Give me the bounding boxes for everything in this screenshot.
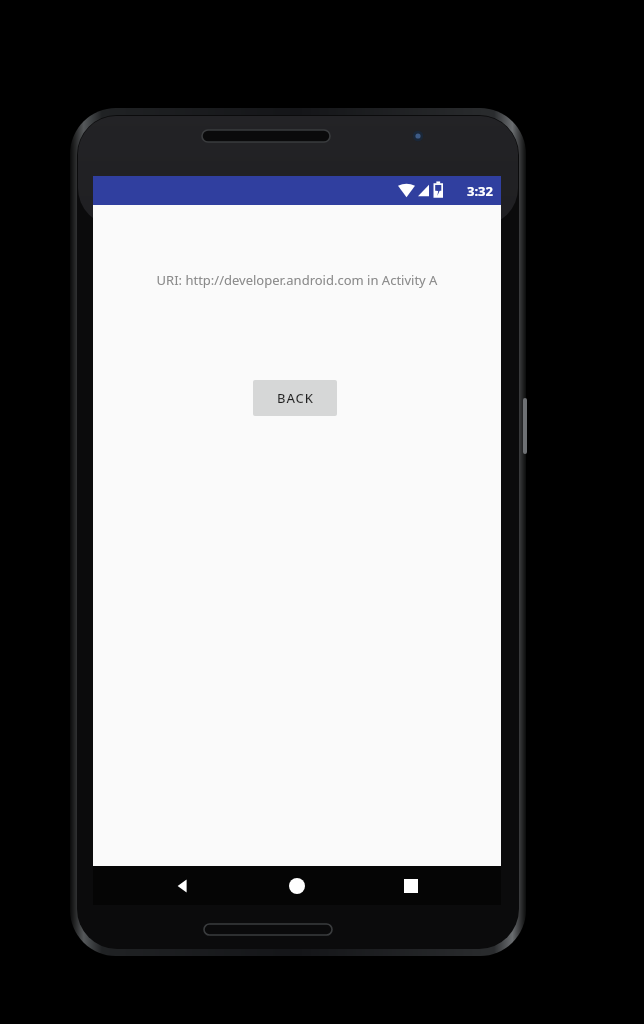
button[interactable]: BACK — [253, 380, 337, 416]
staticText: 3:32 — [467, 182, 493, 200]
staticText: BACK — [277, 389, 314, 407]
button[interactable]: Recent apps — [389, 866, 433, 905]
staticText: URI: http://developer.android.com in Act… — [93, 271, 501, 293]
button[interactable]: Back — [161, 866, 205, 905]
button[interactable]: Home — [275, 866, 319, 905]
